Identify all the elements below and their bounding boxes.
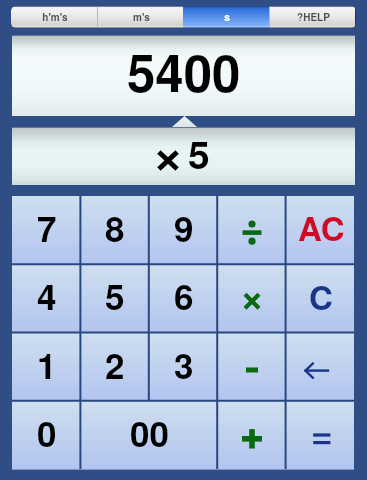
staticText: C <box>309 273 333 320</box>
staticText: 9 <box>174 203 194 253</box>
button[interactable]: 8 <box>80 196 148 264</box>
staticText: 00 <box>130 408 169 458</box>
button[interactable]: Minus <box>217 333 285 401</box>
staticText: s <box>224 10 230 24</box>
button[interactable]: 9 <box>149 196 217 264</box>
button[interactable]: Equals <box>286 401 354 469</box>
staticText: 5 <box>105 271 125 321</box>
button[interactable]: 5400 <box>12 35 355 116</box>
button[interactable]: AC <box>286 196 354 264</box>
button[interactable]: 0 <box>12 401 80 469</box>
button[interactable]: s <box>183 6 269 28</box>
button[interactable]: 7 <box>12 196 80 264</box>
button[interactable]: Backspace <box>286 333 354 401</box>
staticText: 5 <box>188 125 210 181</box>
staticText: 0 <box>37 408 57 458</box>
button[interactable]: 5 <box>12 127 355 185</box>
button[interactable]: ?HELP <box>269 6 355 28</box>
button[interactable]: C <box>286 264 354 332</box>
button[interactable]: 1 <box>12 333 80 401</box>
button[interactable]: 5 <box>80 264 148 332</box>
button[interactable]: 4 <box>12 264 80 332</box>
staticText: AC <box>298 204 345 251</box>
staticText: 3 <box>174 340 194 390</box>
staticText: 5400 <box>127 35 241 108</box>
staticText: 4 <box>37 271 57 321</box>
staticText: h'm's <box>42 10 68 24</box>
button[interactable]: 6 <box>149 264 217 332</box>
button[interactable]: 2 <box>80 333 148 401</box>
button[interactable]: 00 <box>80 401 217 469</box>
button[interactable]: Multiply <box>217 264 285 332</box>
staticText: 8 <box>105 203 125 253</box>
button[interactable]: Divide <box>217 196 285 264</box>
staticText: m's <box>133 10 150 24</box>
staticText: ?HELP <box>297 10 330 24</box>
button[interactable]: 3 <box>149 333 217 401</box>
button[interactable]: m's <box>97 6 183 28</box>
button[interactable]: h'm's <box>11 6 97 28</box>
staticText: 7 <box>37 203 57 253</box>
staticText: 6 <box>174 271 194 321</box>
staticText: 2 <box>105 340 125 390</box>
staticText: 1 <box>37 340 57 390</box>
button[interactable]: Plus <box>217 401 285 469</box>
